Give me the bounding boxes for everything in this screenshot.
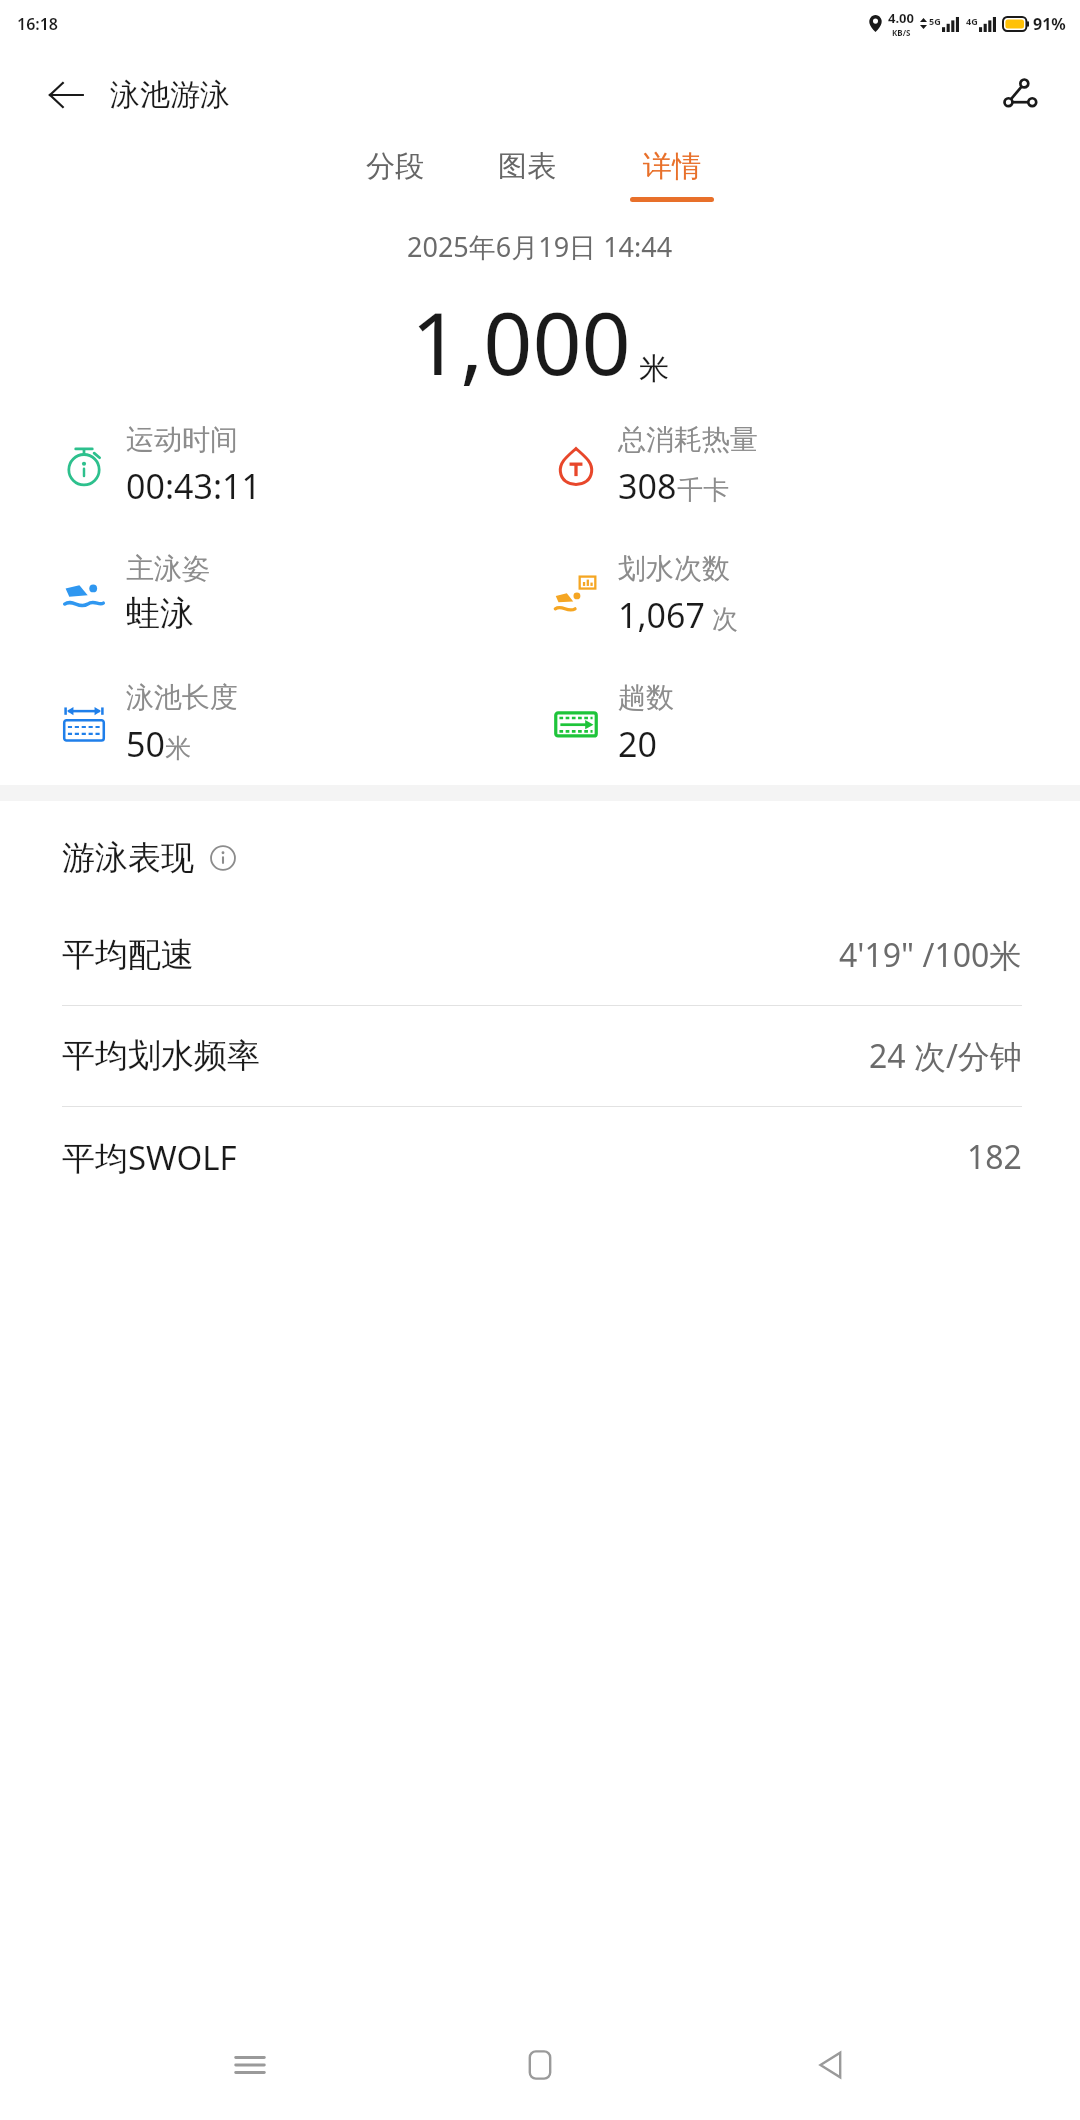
staticText: 主泳姿 — [126, 551, 210, 586]
staticText: 游泳表现 — [62, 837, 194, 879]
button[interactable]: Laps — [540, 680, 1080, 767]
staticText: 图表 — [498, 148, 556, 185]
staticText: 划水次数 — [618, 551, 730, 586]
staticText: 1,000 — [411, 283, 631, 400]
button[interactable]: 平均SWOLF — [0, 1107, 1080, 1207]
button[interactable]: Stroke — [0, 551, 540, 635]
staticText: 91% — [1033, 13, 1066, 35]
button[interactable]: 平均划水频率 — [0, 1006, 1080, 1107]
button[interactable]: Calories — [540, 422, 1080, 509]
other: Calories — [553, 443, 599, 489]
staticText: 308 — [618, 463, 677, 509]
button[interactable]: 图表 — [488, 142, 566, 208]
staticText: 182 — [967, 1135, 1022, 1179]
other: Pool length — [61, 701, 107, 747]
staticText: 米 — [639, 350, 669, 388]
button[interactable]: Duration — [0, 422, 540, 509]
staticText: 次 — [705, 600, 738, 636]
staticText: 总消耗热量 — [618, 422, 758, 457]
button[interactable]: Home — [500, 2025, 580, 2105]
staticText: 蛙泳 — [126, 592, 194, 635]
staticText: 1,067 — [618, 592, 705, 638]
staticText: 16:18 — [17, 13, 59, 35]
staticText: 趟数 — [618, 680, 674, 715]
other: Laps — [553, 701, 599, 747]
staticText: 4.00 — [888, 9, 914, 27]
staticText: 50 — [126, 721, 165, 767]
other: Stroke — [61, 570, 107, 616]
button[interactable]: Recents — [210, 2025, 290, 2105]
button[interactable]: Stroke count — [540, 551, 1080, 638]
button[interactable]: Back — [38, 67, 94, 123]
staticText: 分段 — [366, 148, 424, 185]
staticText: 详情 — [643, 148, 701, 185]
staticText: 米 — [165, 732, 191, 765]
button[interactable]: Back — [790, 2025, 870, 2105]
staticText: 平均配速 — [62, 934, 194, 976]
staticText: 平均SWOLF — [62, 1135, 237, 1180]
staticText: 4'19" /100米 — [839, 933, 1022, 977]
staticText: 00:43:11 — [126, 463, 261, 509]
staticText: 20 — [618, 721, 657, 767]
staticText: 千卡 — [677, 474, 729, 507]
staticText: 泳池游泳 — [110, 76, 230, 114]
other: Duration — [61, 443, 107, 489]
staticText: 24 次/分钟 — [869, 1034, 1022, 1078]
button[interactable]: 详情 — [620, 142, 724, 208]
staticText: KB/S — [892, 27, 911, 38]
button[interactable]: Share — [992, 67, 1048, 123]
button[interactable]: Pool length — [0, 680, 540, 767]
staticText: 泳池长度 — [126, 680, 238, 715]
staticText: 5G — [929, 15, 941, 27]
staticText: 平均划水频率 — [62, 1035, 260, 1077]
staticText: 4G — [966, 15, 978, 27]
staticText: 运动时间 — [126, 422, 238, 457]
button[interactable]: 平均配速 — [0, 905, 1080, 1006]
button[interactable]: Info — [206, 841, 240, 875]
staticText: 2025年6月19日 14:44 — [407, 228, 673, 265]
other: Stroke count — [553, 572, 599, 618]
button[interactable]: 分段 — [356, 142, 434, 208]
